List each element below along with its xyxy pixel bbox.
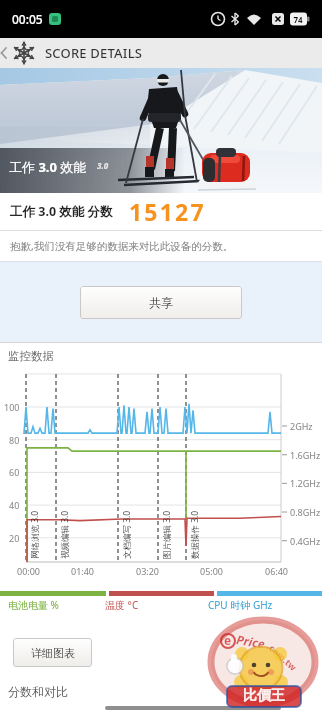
staticText: 详细图表 [31, 646, 75, 660]
staticText: SCORE DETAILS [45, 44, 143, 62]
staticText: 00:05 [12, 11, 43, 27]
button[interactable]: 共享 [80, 286, 242, 319]
staticText: 15127 [129, 196, 206, 227]
staticText: 工作 3.0 效能 分数 [10, 203, 113, 220]
staticText: 分数和对比 [8, 684, 68, 699]
staticText: 抱歉,我们没有足够的数据来对比此设备的分数。 [10, 239, 234, 253]
staticText: 电池电量 % [8, 598, 59, 610]
staticText: 监控数据 [8, 349, 54, 363]
staticText: CPU 时钟 GHz [208, 598, 273, 610]
staticText: 温度 °C [105, 598, 139, 610]
staticText: 共享 [149, 295, 173, 310]
button[interactable]: 详细图表 [13, 638, 92, 667]
button[interactable] [0, 38, 42, 68]
